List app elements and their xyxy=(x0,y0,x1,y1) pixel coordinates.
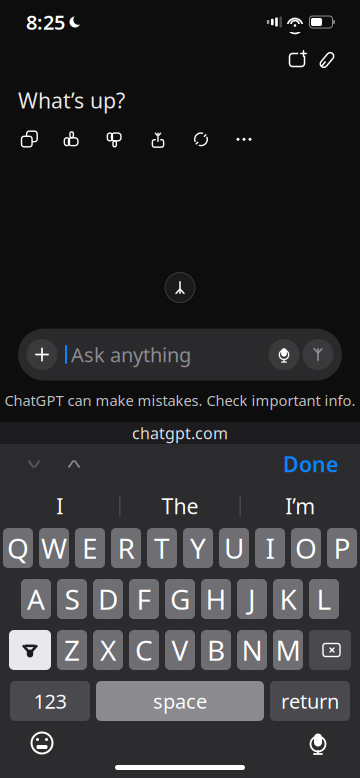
staticText: ChatGPT can make mistakes. Check importa… xyxy=(4,390,355,410)
button[interactable]: I xyxy=(0,484,119,528)
staticText: W xyxy=(41,529,67,567)
button[interactable]: R xyxy=(111,528,141,568)
button[interactable]: Edit xyxy=(312,46,342,74)
button[interactable]: Previous field xyxy=(14,446,54,482)
button[interactable]: Scroll to bottom xyxy=(163,270,197,304)
button[interactable]: G xyxy=(165,579,195,619)
button[interactable]: Delete xyxy=(309,630,351,670)
staticText: I xyxy=(56,492,63,520)
staticText: Y xyxy=(190,529,206,567)
button[interactable]: Good response xyxy=(61,128,83,150)
staticText: Q xyxy=(7,529,29,567)
button[interactable]: L xyxy=(309,579,339,619)
button[interactable]: I’m xyxy=(241,484,360,528)
staticText: H xyxy=(205,580,226,618)
button[interactable]: More options xyxy=(233,128,255,150)
staticText: chatgpt.com xyxy=(132,422,228,444)
button[interactable]: Bad response xyxy=(104,128,126,150)
button[interactable]: I xyxy=(255,528,285,568)
staticText: M xyxy=(275,631,300,669)
button[interactable]: D xyxy=(93,579,123,619)
button[interactable]: A xyxy=(21,579,51,619)
staticText: 123 xyxy=(33,688,66,714)
staticText: U xyxy=(224,529,244,567)
button[interactable]: K xyxy=(273,579,303,619)
button[interactable]: E xyxy=(75,528,105,568)
staticText: S xyxy=(64,580,79,618)
staticText: J xyxy=(248,580,256,618)
button[interactable]: J xyxy=(237,579,267,619)
button[interactable]: O xyxy=(291,528,321,568)
button[interactable]: S xyxy=(57,579,87,619)
staticText: I xyxy=(265,529,274,567)
staticText: P xyxy=(333,529,350,567)
button[interactable]: Send xyxy=(301,337,335,371)
button[interactable]: T xyxy=(147,528,177,568)
staticText: R xyxy=(117,529,134,567)
staticText: V xyxy=(171,631,188,669)
staticText: C xyxy=(135,631,153,669)
button[interactable]: space xyxy=(96,681,264,721)
button[interactable]: Y xyxy=(183,528,213,568)
button[interactable]: Done xyxy=(275,446,346,482)
button[interactable]: Share xyxy=(147,128,169,150)
staticText: 8:25 xyxy=(26,9,65,35)
button[interactable]: The xyxy=(120,484,240,528)
button[interactable]: Q xyxy=(3,528,33,568)
staticText: L xyxy=(316,580,331,618)
staticText: K xyxy=(279,580,296,618)
staticText: N xyxy=(241,631,262,669)
staticText: Z xyxy=(64,631,80,669)
button[interactable]: 123 xyxy=(10,681,90,721)
staticText: I’m xyxy=(285,492,315,520)
staticText: D xyxy=(98,580,118,618)
staticText: B xyxy=(207,631,225,669)
button[interactable]: Emoji xyxy=(22,723,62,763)
button[interactable]: X xyxy=(93,630,123,670)
button[interactable]: return xyxy=(270,681,350,721)
staticText: A xyxy=(27,580,45,618)
button[interactable]: New chat xyxy=(282,46,312,74)
button[interactable]: C xyxy=(129,630,159,670)
button[interactable]: B xyxy=(201,630,231,670)
button[interactable]: Dictation xyxy=(298,722,338,764)
button[interactable]: Shift xyxy=(9,630,51,670)
staticText: What’s up? xyxy=(18,86,125,114)
button[interactable]: H xyxy=(201,579,231,619)
button[interactable]: P xyxy=(327,528,357,568)
staticText: Done xyxy=(283,450,338,478)
button[interactable]: Z xyxy=(57,630,87,670)
button[interactable]: Next field xyxy=(54,446,94,482)
button[interactable]: Copy xyxy=(18,128,40,150)
staticText: F xyxy=(136,580,151,618)
button[interactable]: F xyxy=(129,579,159,619)
staticText: G xyxy=(170,580,190,618)
button[interactable]: Voice input xyxy=(267,337,301,371)
staticText: X xyxy=(100,631,116,669)
button[interactable]: W xyxy=(39,528,69,568)
button[interactable]: M xyxy=(273,630,303,670)
staticText: T xyxy=(154,529,170,567)
staticText: E xyxy=(82,529,98,567)
staticText: The xyxy=(161,492,198,520)
button[interactable]: Add attachment xyxy=(25,337,59,371)
button[interactable]: N xyxy=(237,630,267,670)
staticText: O xyxy=(295,529,317,567)
staticText: Ask anything xyxy=(71,341,191,368)
staticText: space xyxy=(153,688,207,714)
staticText: return xyxy=(281,688,339,714)
button[interactable]: Regenerate xyxy=(190,128,212,150)
button[interactable]: V xyxy=(165,630,195,670)
button[interactable]: U xyxy=(219,528,249,568)
